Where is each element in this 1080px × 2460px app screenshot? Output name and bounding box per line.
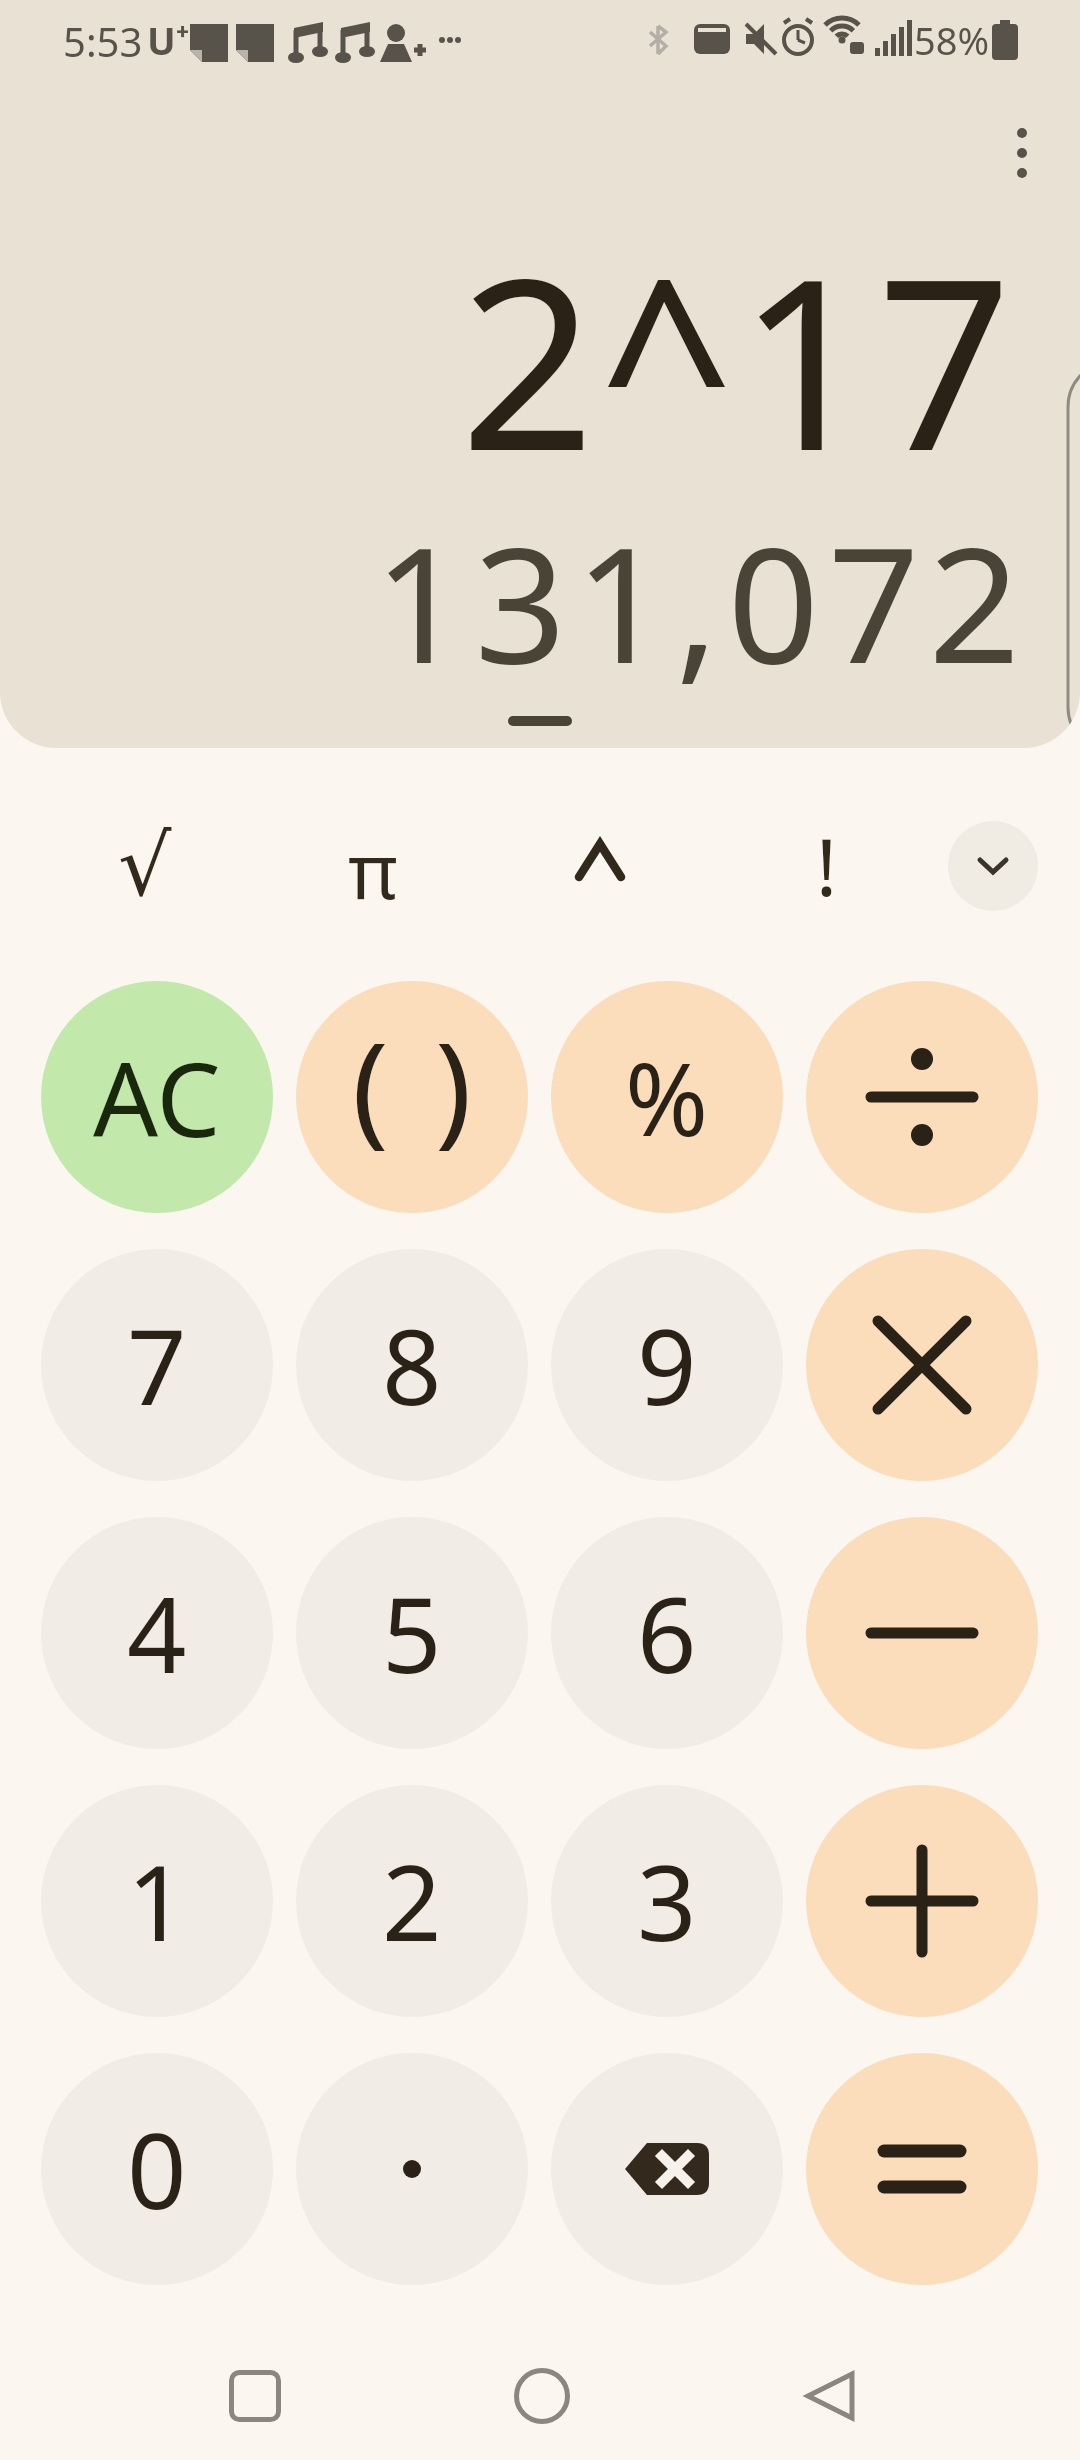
- button[interactable]: [806, 2053, 1038, 2285]
- staticText: 131,072: [374, 492, 1030, 707]
- button[interactable]: √: [65, 796, 225, 936]
- button[interactable]: [502, 2356, 582, 2436]
- button[interactable]: [806, 1249, 1038, 1481]
- button[interactable]: 4: [41, 1517, 273, 1749]
- button[interactable]: 8: [296, 1249, 528, 1481]
- staticText: 7: [127, 1294, 187, 1436]
- button[interactable]: [790, 2356, 870, 2436]
- button[interactable]: 6: [551, 1517, 783, 1749]
- button[interactable]: 5: [296, 1517, 528, 1749]
- staticText: (: [352, 1002, 389, 1168]
- button[interactable]: [806, 981, 1038, 1213]
- staticText: √: [118, 817, 172, 915]
- staticText: AC: [93, 1028, 221, 1167]
- button[interactable]: (: [296, 981, 528, 1213]
- button[interactable]: [296, 2053, 528, 2285]
- staticText: !: [816, 813, 837, 919]
- button[interactable]: [948, 821, 1038, 911]
- button[interactable]: 1: [41, 1785, 273, 2017]
- staticText: 1: [127, 1830, 187, 1972]
- button[interactable]: [520, 791, 680, 931]
- button[interactable]: 9: [551, 1249, 783, 1481]
- button[interactable]: [215, 2356, 295, 2436]
- button[interactable]: !: [746, 796, 906, 936]
- button[interactable]: π: [293, 800, 453, 940]
- staticText: U⁺: [147, 14, 190, 66]
- button[interactable]: 2: [296, 1785, 528, 2017]
- staticText: 2: [382, 1830, 442, 1972]
- staticText: 2^17: [460, 198, 1016, 493]
- button[interactable]: 0: [41, 2053, 273, 2285]
- button[interactable]: [806, 1517, 1038, 1749]
- staticText: 5:53: [63, 14, 143, 66]
- staticText: 3: [637, 1830, 697, 1972]
- button[interactable]: AC: [41, 981, 273, 1213]
- button[interactable]: [806, 1785, 1038, 2017]
- staticText: 58%: [914, 14, 990, 66]
- staticText: ): [435, 1002, 472, 1168]
- staticText: 8: [382, 1294, 442, 1436]
- button[interactable]: 3: [551, 1785, 783, 2017]
- button[interactable]: [1000, 118, 1044, 188]
- staticText: 4: [127, 1562, 187, 1704]
- staticText: %: [625, 1029, 709, 1165]
- button[interactable]: 7: [41, 1249, 273, 1481]
- staticText: 9: [637, 1294, 697, 1436]
- staticText: 6: [637, 1562, 697, 1704]
- staticText: π: [348, 818, 398, 922]
- staticText: 0: [127, 2098, 187, 2240]
- button[interactable]: [551, 2053, 783, 2285]
- button[interactable]: %: [551, 981, 783, 1213]
- staticText: 5: [382, 1562, 442, 1704]
